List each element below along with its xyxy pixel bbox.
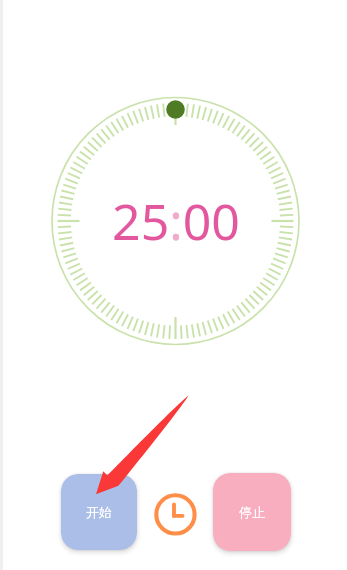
staticText: 开始 <box>86 504 112 520</box>
staticText: 25:00 <box>112 187 240 255</box>
button[interactable]: Timer <box>153 492 197 536</box>
button[interactable]: 开始 <box>61 474 137 550</box>
staticText: 停止 <box>239 504 265 520</box>
button[interactable]: 停止 <box>213 473 291 551</box>
